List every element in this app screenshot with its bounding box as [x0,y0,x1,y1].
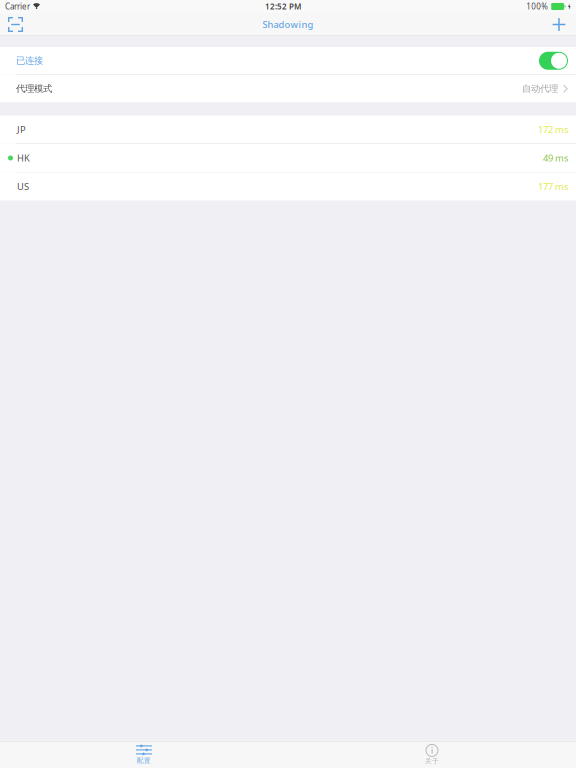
button[interactable]: JP [0,115,576,143]
staticText: 49 ms [543,152,568,164]
staticText: 自动代理 [522,83,558,94]
staticText: 12:52 PM [265,1,301,12]
staticText: 已连接 [16,55,43,66]
staticText: 代理模式 [16,83,52,94]
staticText: JP [17,123,26,136]
staticText: 177 ms [538,180,568,193]
staticText: Shadowing [262,18,313,31]
staticText: US [17,180,29,193]
staticText: 关于 [425,757,439,765]
button[interactable]: US [0,172,576,200]
button[interactable]: HK [0,144,576,172]
button[interactable]: 配置 [0,741,288,768]
staticText: 100% [526,1,548,12]
staticText: 配置 [137,756,151,765]
button[interactable]: 关于 [288,741,576,768]
staticText: HK [17,152,30,164]
button[interactable]: 已连接 [0,47,576,74]
staticText: Carrier [5,1,30,12]
button[interactable]: Scan QR code [0,13,29,36]
button[interactable]: Add [546,13,576,36]
staticText: 172 ms [538,123,568,136]
button[interactable]: 代理模式 [0,75,576,102]
